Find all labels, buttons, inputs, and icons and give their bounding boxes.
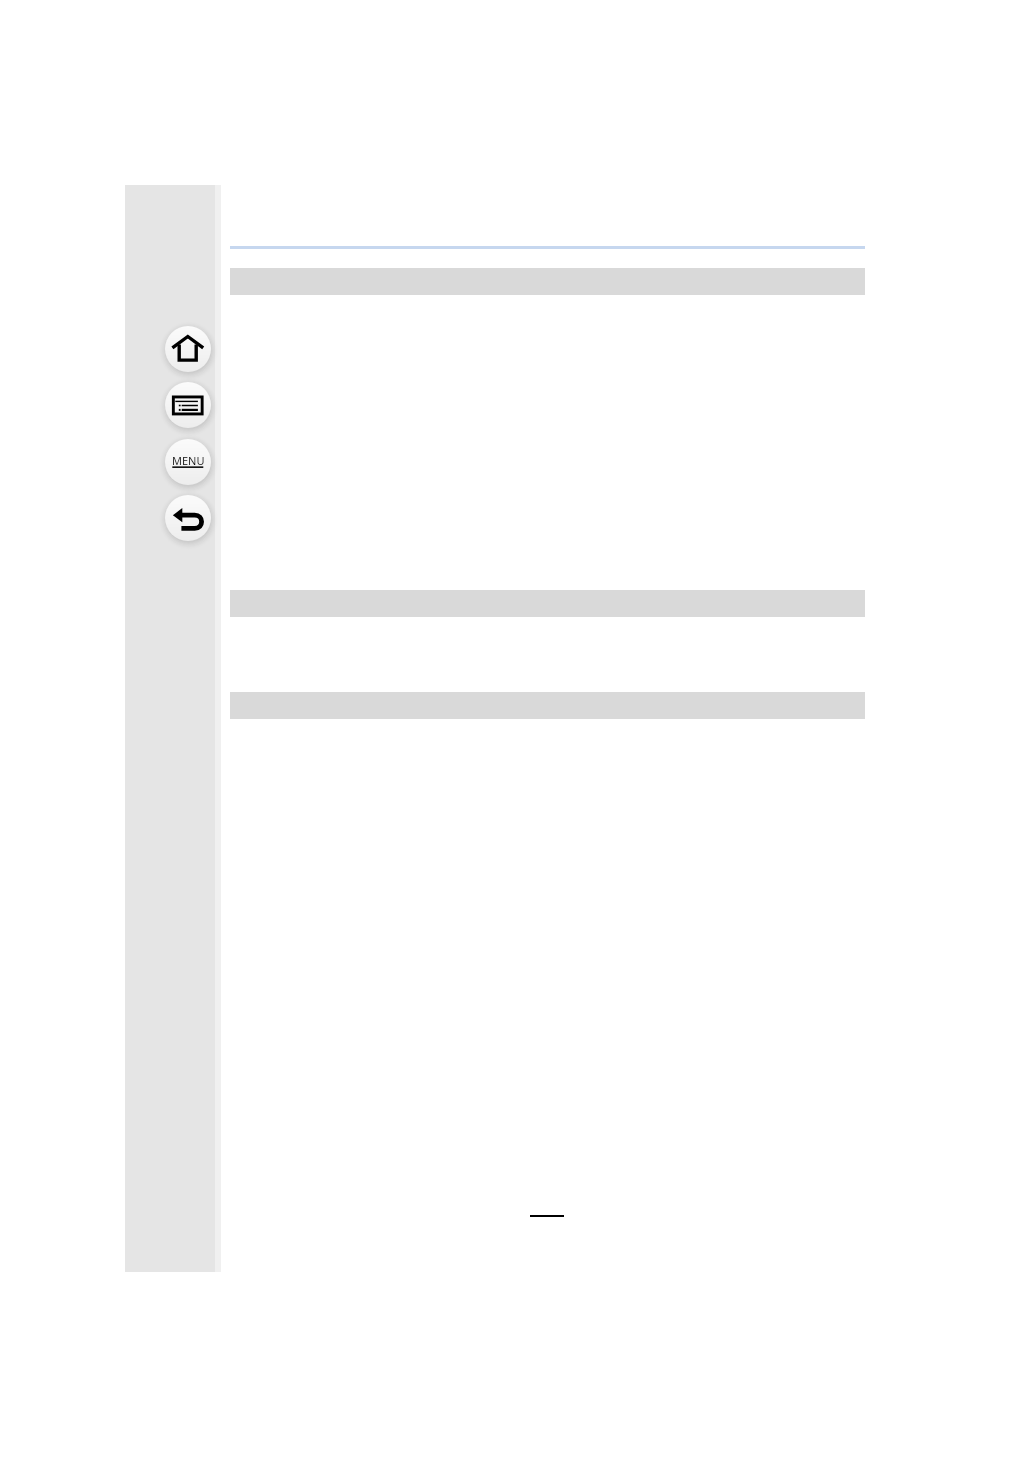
button[interactable]: Home <box>165 326 211 372</box>
button[interactable]: Menu <box>165 439 211 485</box>
staticText: MENU <box>172 453 205 468</box>
button[interactable]: Table of contents <box>165 382 211 428</box>
button[interactable]: Back <box>165 495 211 541</box>
